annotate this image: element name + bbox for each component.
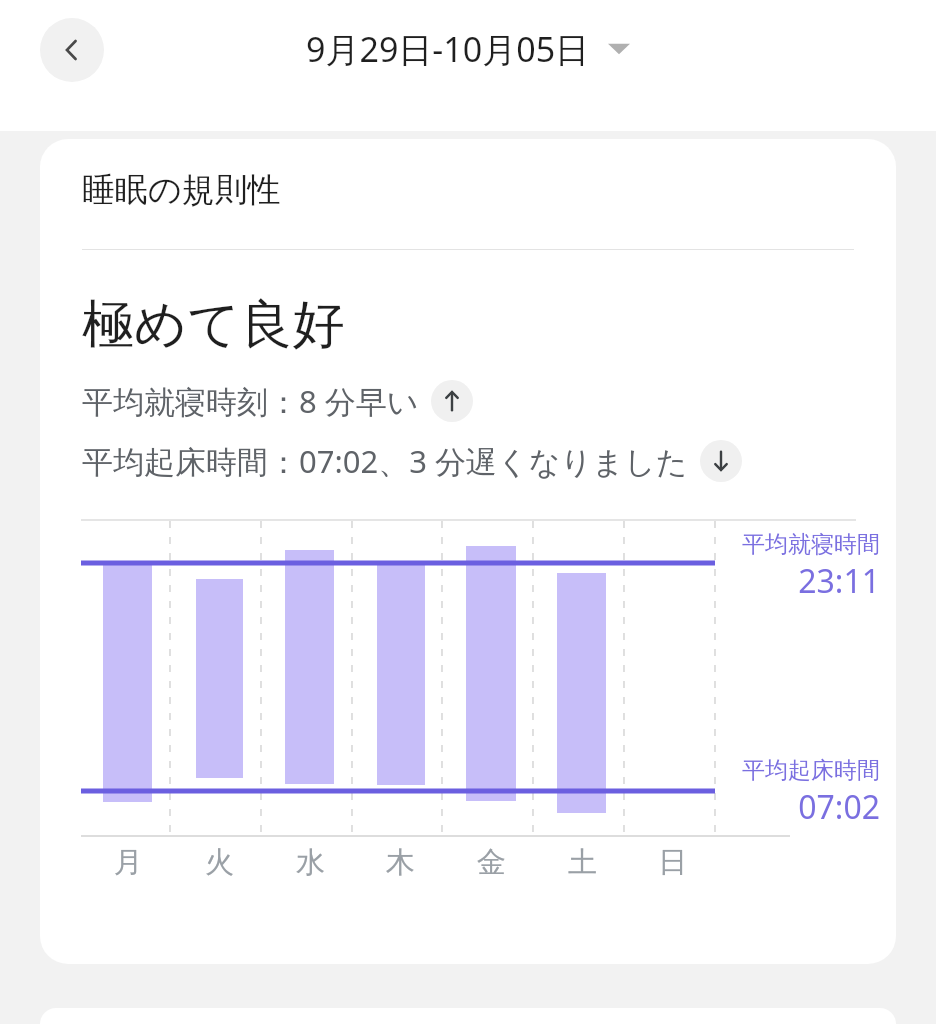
staticText: 07:02 bbox=[798, 785, 880, 829]
staticText: 水 bbox=[296, 844, 325, 881]
staticText: 23:11 bbox=[798, 559, 880, 603]
staticText: 平均起床時間：07:02、3 分遅くなりました bbox=[82, 440, 688, 482]
staticText: 木 bbox=[386, 844, 415, 881]
button[interactable]: 睡眠の規則性 bbox=[40, 139, 896, 964]
staticText: 平均就寝時刻：8 分早い bbox=[82, 380, 419, 422]
staticText: 土 bbox=[568, 844, 597, 881]
staticText: 9月29日-10月05日 bbox=[306, 26, 590, 72]
staticText: 金 bbox=[477, 844, 506, 881]
button[interactable]: 9月29日-10月05日 bbox=[300, 22, 636, 76]
staticText: 極めて良好 bbox=[82, 292, 345, 358]
staticText: 平均就寝時間 bbox=[742, 530, 880, 559]
staticText: 睡眠の規則性 bbox=[82, 169, 281, 211]
staticText: 月 bbox=[114, 844, 143, 881]
staticText: 平均起床時間 bbox=[742, 756, 880, 785]
staticText: 火 bbox=[205, 844, 234, 881]
button[interactable]: Back bbox=[40, 18, 104, 82]
staticText: 日 bbox=[658, 844, 687, 881]
